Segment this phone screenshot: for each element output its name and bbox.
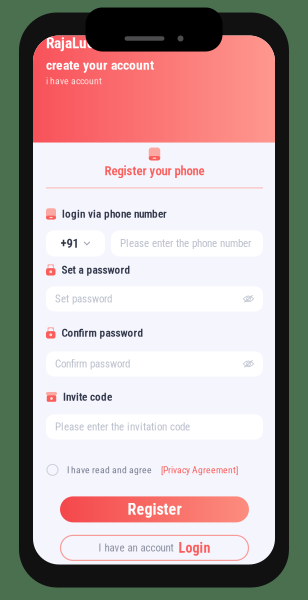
staticText: I have read and agree xyxy=(67,464,152,476)
staticText: [Privacy Agreement] xyxy=(161,464,238,476)
staticText: Please enter the phone number xyxy=(120,237,251,250)
button[interactable]: I have read and agree xyxy=(46,463,263,476)
button[interactable]: +91 xyxy=(46,230,105,256)
staticText: Set a password xyxy=(61,263,130,276)
staticText: I have an account xyxy=(98,541,173,554)
button[interactable]: Show password xyxy=(243,294,254,303)
staticText: login via phone number xyxy=(62,207,167,220)
staticText: RajaLuck xyxy=(46,34,101,52)
staticText: Set password xyxy=(55,292,112,305)
button[interactable]: I have an account xyxy=(60,535,248,560)
staticText: Invite code xyxy=(63,390,112,403)
button[interactable]: Show password xyxy=(243,359,254,368)
staticText: Register xyxy=(127,500,181,519)
staticText: Login xyxy=(178,540,210,556)
button[interactable]: Register xyxy=(60,496,249,522)
button[interactable]: i have account xyxy=(46,76,262,85)
staticText: Confirm password xyxy=(61,326,143,339)
staticText: Please enter the invitation code xyxy=(55,420,190,433)
staticText: create your account xyxy=(46,57,154,73)
staticText: Confirm password xyxy=(55,357,130,370)
staticText: Register your phone xyxy=(104,163,204,178)
staticText: +91 xyxy=(60,236,78,251)
staticText: i have account xyxy=(46,75,102,87)
